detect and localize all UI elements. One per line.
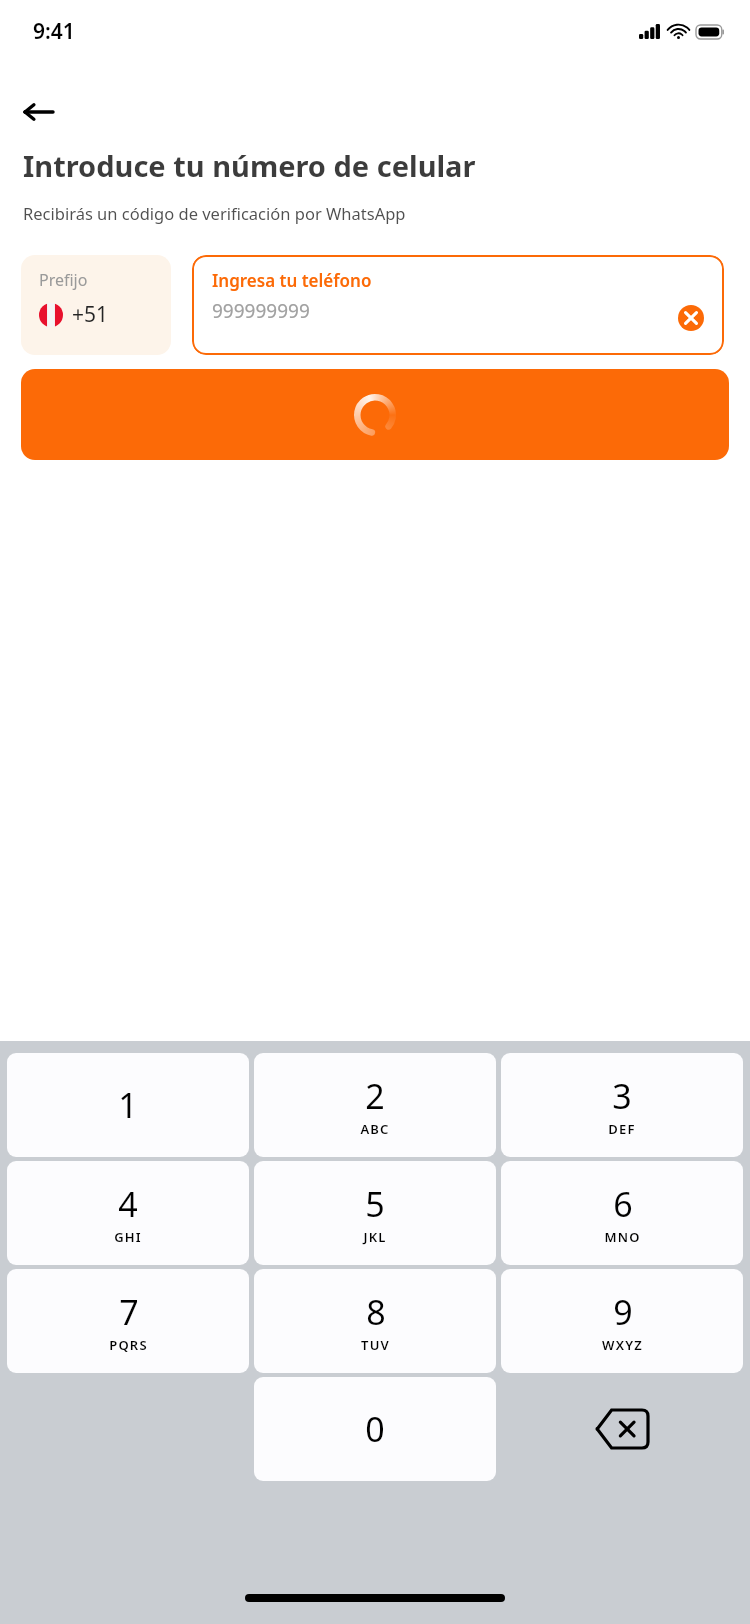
button[interactable]: 0 (254, 1377, 496, 1481)
staticText: MNO (604, 1228, 641, 1246)
staticText: 9:41 (33, 17, 75, 46)
button[interactable]: 7 (7, 1269, 249, 1373)
staticText: GHI (114, 1228, 142, 1246)
staticText: Recibirás un código de verificación por … (23, 202, 406, 224)
staticText: 999999999 (212, 298, 310, 324)
button[interactable]: 1 (7, 1053, 249, 1157)
button[interactable]: Ingresa tu teléfono (192, 255, 724, 355)
staticText: 6 (613, 1181, 633, 1227)
button[interactable]: 5 (254, 1161, 496, 1265)
staticText: 7 (119, 1289, 139, 1335)
staticText: 0 (365, 1406, 385, 1452)
staticText: 5 (365, 1181, 385, 1227)
staticText: DEF (608, 1120, 636, 1138)
staticText: Prefijo (39, 269, 88, 291)
button[interactable]: 6 (501, 1161, 743, 1265)
staticText: 8 (366, 1289, 386, 1335)
staticText: 9 (613, 1289, 633, 1335)
button[interactable]: 3 (501, 1053, 743, 1157)
staticText: WXYZ (602, 1336, 643, 1354)
button[interactable]: Prefijo (21, 255, 171, 355)
button[interactable]: 8 (254, 1269, 496, 1373)
staticText: JKL (363, 1228, 387, 1246)
button[interactable]: Clear (677, 304, 705, 332)
staticText: Introduce tu número de celular (23, 146, 476, 185)
staticText: 2 (365, 1073, 385, 1119)
button[interactable]: 9 (501, 1269, 743, 1373)
button[interactable]: Continuar (21, 369, 729, 460)
button[interactable]: 4 (7, 1161, 249, 1265)
staticText: PQRS (109, 1336, 148, 1354)
button[interactable]: Backspace (501, 1377, 743, 1481)
button[interactable]: Back (24, 90, 68, 134)
staticText: 3 (612, 1073, 632, 1119)
staticText: 4 (118, 1181, 138, 1227)
staticText: Ingresa tu teléfono (212, 269, 372, 292)
staticText: 1 (118, 1082, 138, 1128)
staticText: TUV (361, 1336, 390, 1354)
staticText: +51 (72, 300, 109, 329)
button[interactable]: 2 (254, 1053, 496, 1157)
staticText: ABC (360, 1120, 390, 1138)
